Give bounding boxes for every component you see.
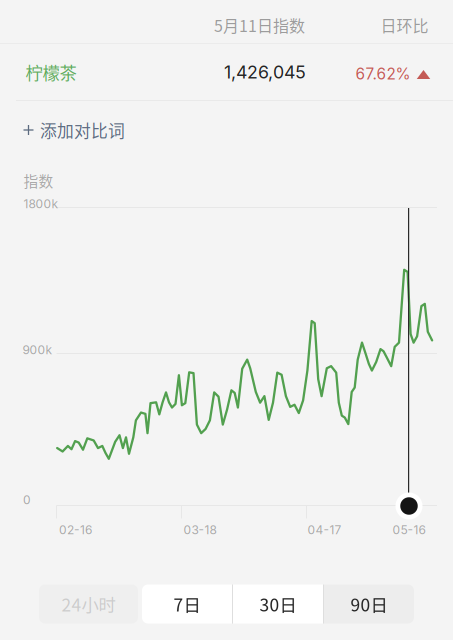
staticText: 添加对比词 [40,118,125,142]
staticText: 67.62% [355,65,410,83]
staticText: 900k [22,343,52,357]
staticText: 日环比 [380,13,428,37]
button[interactable]: 30日 [233,584,323,623]
staticText: 5月11日指数 [214,13,305,37]
button[interactable]: 柠檬茶 [0,43,453,100]
staticText: 7日 [173,591,200,617]
staticText: 02-16 [59,523,92,537]
staticText: 03-18 [183,523,216,537]
staticText: 1800k [23,197,58,211]
staticText: 指数 [23,170,53,191]
staticText: 90日 [350,591,387,617]
staticText: 05-16 [392,523,425,537]
staticText: 30日 [259,591,296,617]
staticText: 0 [23,493,31,507]
staticText: 1,426,045 [224,61,306,83]
button[interactable]: 添加对比词 [0,109,453,151]
staticText: 04-17 [307,523,341,537]
button[interactable]: 90日 [324,584,414,623]
staticText: 柠檬茶 [25,59,76,85]
button[interactable]: 24小时 [39,584,138,623]
staticText: 24小时 [61,591,115,617]
button[interactable]: 7日 [142,584,232,623]
